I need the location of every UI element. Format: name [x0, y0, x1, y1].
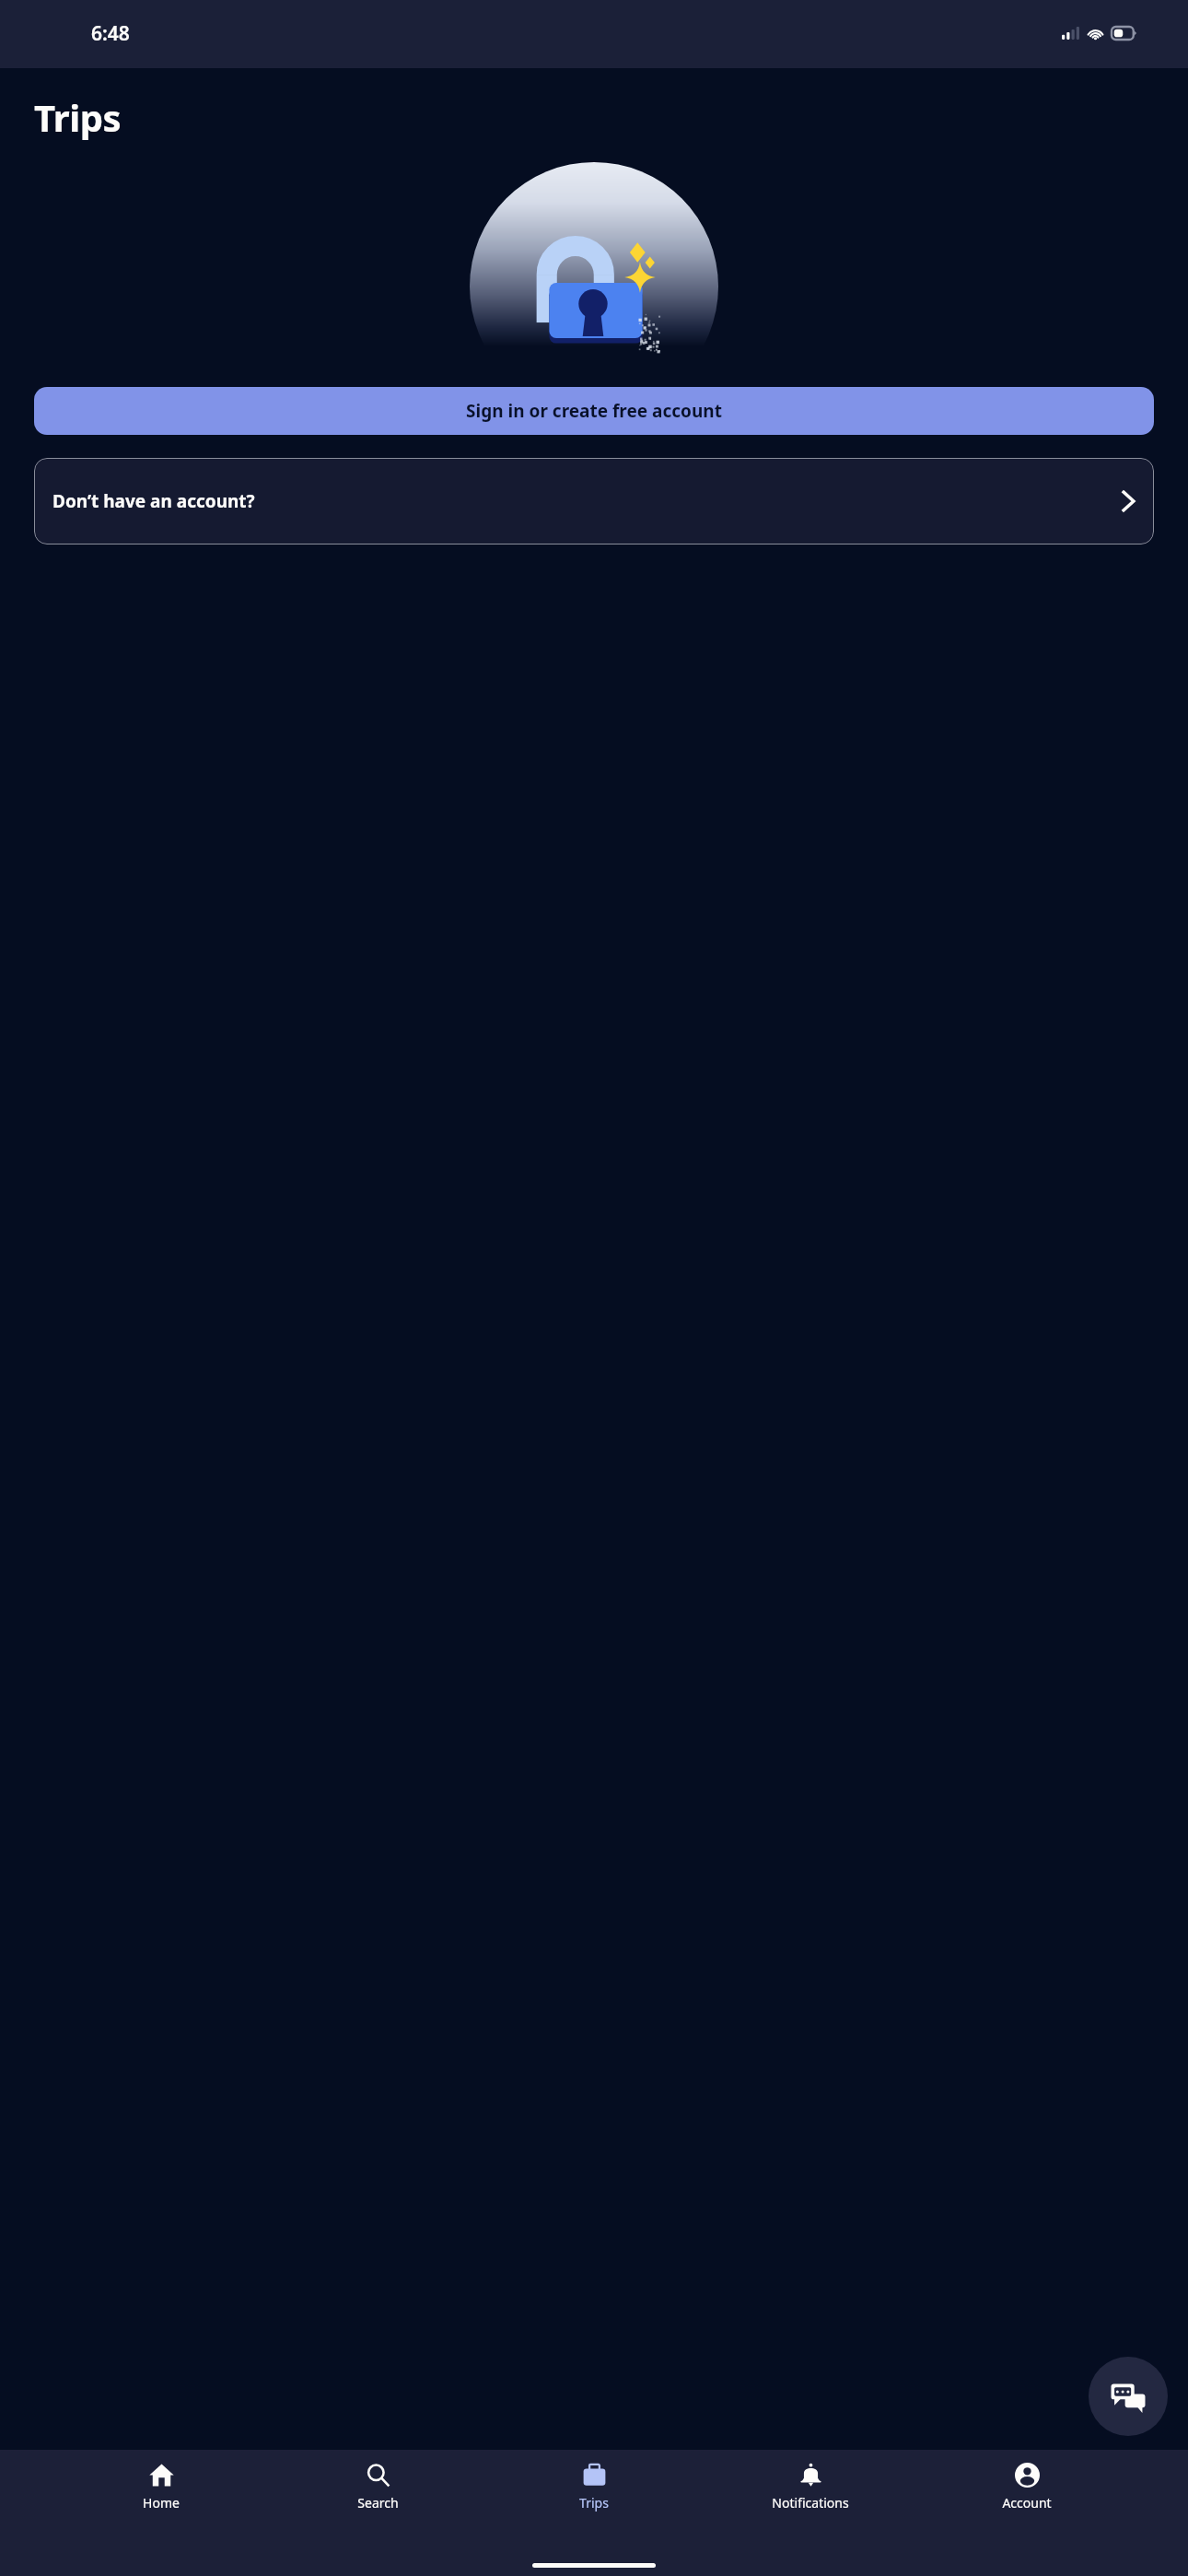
staticText: Account	[1002, 2494, 1052, 2512]
button[interactable]: Search	[322, 2463, 433, 2512]
staticText: Search	[357, 2494, 399, 2512]
staticText: Trips	[579, 2494, 609, 2512]
staticText: Notifications	[772, 2494, 849, 2512]
button[interactable]: Trips	[539, 2463, 649, 2512]
staticText: Home	[143, 2494, 180, 2512]
staticText: Trips	[34, 92, 122, 142]
staticText: 6:48	[91, 20, 130, 47]
button[interactable]: Home	[106, 2463, 216, 2512]
staticText: Don’t have an account?	[52, 489, 1122, 513]
button[interactable]: Notifications	[755, 2463, 866, 2512]
button[interactable]: Don’t have an account?	[34, 458, 1154, 544]
button[interactable]: Chat support	[1089, 2357, 1168, 2436]
button[interactable]: Sign in or create free account	[34, 387, 1154, 435]
staticText: Sign in or create free account	[466, 399, 722, 423]
button[interactable]: Account	[972, 2463, 1082, 2512]
